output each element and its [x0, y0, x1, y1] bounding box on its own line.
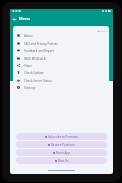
staticText: Feedback and Report — [24, 49, 54, 53]
button[interactable]: Subscribe to Premium — [16, 133, 107, 140]
staticText: Subscribe to Premium — [48, 135, 79, 139]
button[interactable]: Check Server Status — [13, 77, 109, 84]
button[interactable]: Feedback and Report — [13, 47, 109, 54]
staticText: FAQ and Privacy Policies — [24, 42, 58, 46]
staticText: Rate Us — [58, 159, 69, 163]
button[interactable]: Restore Purchase — [16, 141, 107, 148]
staticText: Check Update — [24, 71, 44, 75]
button[interactable]: RATE MOJILALA — [13, 55, 109, 62]
button[interactable]: Check Update — [13, 69, 109, 76]
button[interactable]: Share App — [16, 149, 107, 156]
button[interactable]: About — [13, 32, 109, 39]
button[interactable]: FAQ and Privacy Policies — [13, 40, 109, 47]
staticText: ver 2.1.4 — [97, 29, 107, 32]
staticText: Share App — [56, 151, 70, 155]
staticText: Settings — [24, 86, 36, 90]
staticText: RATE MOJILALA — [24, 57, 46, 61]
staticText: Restore Purchase — [51, 143, 75, 147]
button[interactable]: Back — [11, 16, 17, 22]
button[interactable]: Share — [13, 62, 109, 69]
staticText: Menu — [19, 16, 30, 21]
button[interactable]: Rate Us — [16, 157, 107, 164]
button[interactable]: Settings — [13, 84, 109, 91]
staticText: Check Server Status — [24, 79, 52, 83]
staticText: About — [24, 34, 33, 38]
staticText: Share — [24, 64, 33, 68]
